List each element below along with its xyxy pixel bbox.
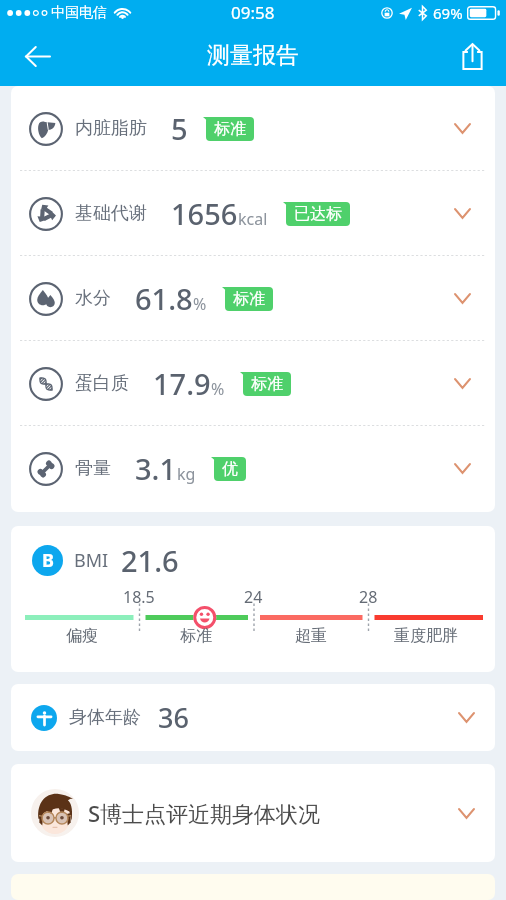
button[interactable]: Share bbox=[450, 34, 494, 78]
staticText: 17.9 bbox=[153, 364, 211, 403]
staticText: 基础代谢 bbox=[75, 202, 147, 225]
staticText: 3.1 bbox=[135, 449, 177, 488]
staticText: kg bbox=[177, 463, 196, 485]
button[interactable]: Back bbox=[12, 31, 64, 81]
staticText: 标准 bbox=[214, 119, 246, 139]
staticText: 标准 bbox=[251, 374, 283, 394]
button[interactable]: 身体年龄 bbox=[11, 684, 495, 751]
button[interactable]: 骨量 bbox=[11, 426, 495, 511]
staticText: 18.5 bbox=[123, 586, 155, 608]
staticText: % bbox=[193, 293, 207, 315]
button[interactable]: S博士点评近期身体状况 bbox=[11, 764, 495, 862]
staticText: % bbox=[211, 378, 225, 400]
staticText: 标准 bbox=[180, 626, 212, 646]
staticText: 21.6 bbox=[121, 541, 179, 580]
button[interactable]: 水分 bbox=[11, 256, 495, 341]
staticText: 中国电信 bbox=[51, 4, 107, 22]
staticText: 1656 bbox=[171, 194, 238, 233]
staticText: 已达标 bbox=[294, 204, 342, 224]
staticText: B bbox=[42, 548, 54, 573]
button[interactable]: 蛋白质 bbox=[11, 341, 495, 426]
staticText: 标准 bbox=[233, 289, 265, 309]
staticText: 09:58 bbox=[231, 1, 275, 24]
staticText: 超重 bbox=[295, 626, 327, 646]
button[interactable]: 内脏脂肪 bbox=[11, 86, 495, 171]
button[interactable]: B bbox=[11, 526, 495, 672]
staticText: 内脏脂肪 bbox=[75, 117, 147, 140]
staticText: 偏瘦 bbox=[66, 626, 98, 646]
staticText: 蛋白质 bbox=[75, 372, 129, 395]
staticText: S博士点评近期身体状况 bbox=[88, 798, 321, 828]
staticText: 28 bbox=[359, 586, 378, 608]
staticText: 36 bbox=[158, 699, 189, 736]
staticText: 69% bbox=[433, 3, 463, 23]
staticText: 重度肥胖 bbox=[394, 626, 458, 646]
staticText: 水分 bbox=[75, 287, 111, 310]
staticText: 身体年龄 bbox=[69, 706, 141, 729]
staticText: kcal bbox=[238, 208, 268, 230]
staticText: 24 bbox=[244, 586, 263, 608]
staticText: 骨量 bbox=[75, 457, 111, 480]
staticText: 61.8 bbox=[135, 279, 193, 318]
button[interactable]: 基础代谢 bbox=[11, 171, 495, 256]
staticText: 测量报告 bbox=[207, 41, 299, 70]
staticText: 5 bbox=[171, 109, 188, 148]
staticText: BMI bbox=[74, 548, 109, 573]
staticText: 优 bbox=[222, 459, 238, 479]
